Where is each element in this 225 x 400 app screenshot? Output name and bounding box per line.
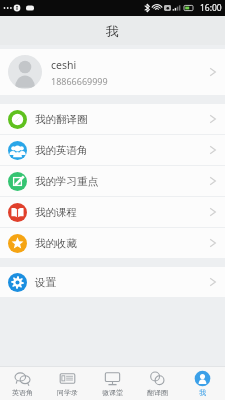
staticText: 我的翻译圈 (35, 113, 209, 126)
staticText: 我的课程 (35, 206, 209, 219)
button[interactable]: 我的课程 (0, 197, 225, 227)
staticText: 设置 (35, 276, 209, 289)
button[interactable]: 微课堂 (90, 367, 135, 400)
staticText: 我 (106, 23, 119, 39)
staticText: 我的收藏 (35, 237, 209, 250)
button[interactable]: 我 (180, 367, 225, 400)
staticText: 我的英语角 (35, 144, 209, 157)
button[interactable]: 我的翻译圈 (0, 104, 225, 134)
button[interactable]: 同学录 (45, 367, 90, 400)
button[interactable]: 英语角 (0, 367, 45, 400)
staticText: 同学录 (57, 388, 78, 397)
staticText: 我 (199, 388, 206, 397)
button[interactable]: 设置 (0, 267, 225, 297)
button[interactable]: ceshi (0, 49, 225, 95)
staticText: 微课堂 (102, 388, 123, 397)
staticText: 16:00 (200, 2, 222, 14)
staticText: ceshi (51, 58, 77, 72)
staticText: 翻译圈 (147, 388, 168, 397)
button[interactable]: 翻译圈 (135, 367, 180, 400)
button[interactable]: 我的收藏 (0, 228, 225, 258)
staticText: 18866669999 (51, 75, 108, 87)
staticText: 英语角 (12, 388, 33, 397)
button[interactable]: 我的英语角 (0, 135, 225, 165)
staticText: 我的学习重点 (35, 175, 209, 188)
button[interactable]: 我的学习重点 (0, 166, 225, 196)
